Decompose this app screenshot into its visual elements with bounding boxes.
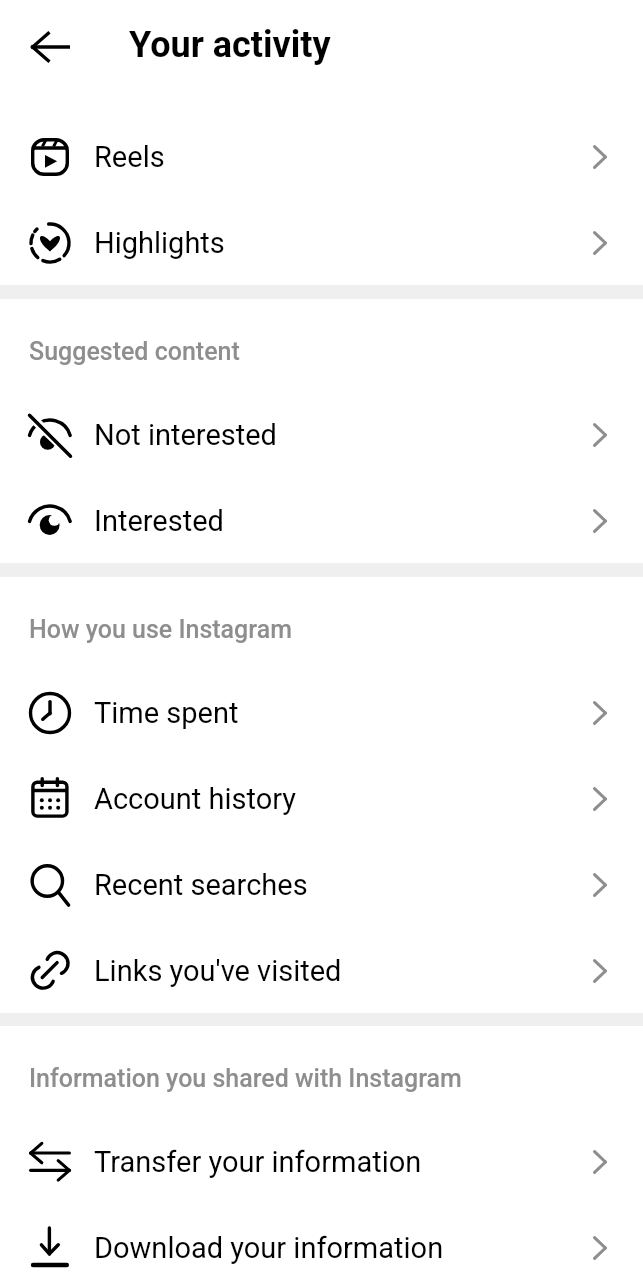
staticText: Suggested content <box>29 337 240 366</box>
button[interactable]: Back <box>14 14 86 80</box>
staticText: Download your information <box>94 1231 444 1265</box>
staticText: Recent searches <box>94 868 308 902</box>
staticText: How you use Instagram <box>29 615 292 644</box>
button[interactable]: Links you've visited <box>0 927 643 1013</box>
button[interactable]: Reels <box>0 113 643 199</box>
staticText: Links you've visited <box>94 954 342 988</box>
staticText: Time spent <box>94 696 239 730</box>
staticText: Account history <box>94 782 297 816</box>
button[interactable]: Not interested <box>0 391 643 477</box>
button[interactable]: Interested <box>0 477 643 563</box>
button[interactable]: Recent searches <box>0 841 643 927</box>
staticText: Highlights <box>94 226 225 260</box>
staticText: Transfer your information <box>94 1145 422 1179</box>
button[interactable]: Download your information <box>0 1204 643 1280</box>
button[interactable]: Time spent <box>0 669 643 755</box>
button[interactable]: Account history <box>0 755 643 841</box>
staticText: Reels <box>94 140 165 174</box>
staticText: Information you shared with Instagram <box>29 1064 462 1093</box>
button[interactable]: Highlights <box>0 199 643 285</box>
button[interactable]: Transfer your information <box>0 1118 643 1204</box>
staticText: Your activity <box>129 24 331 66</box>
staticText: Interested <box>94 504 224 538</box>
staticText: Not interested <box>94 418 277 452</box>
